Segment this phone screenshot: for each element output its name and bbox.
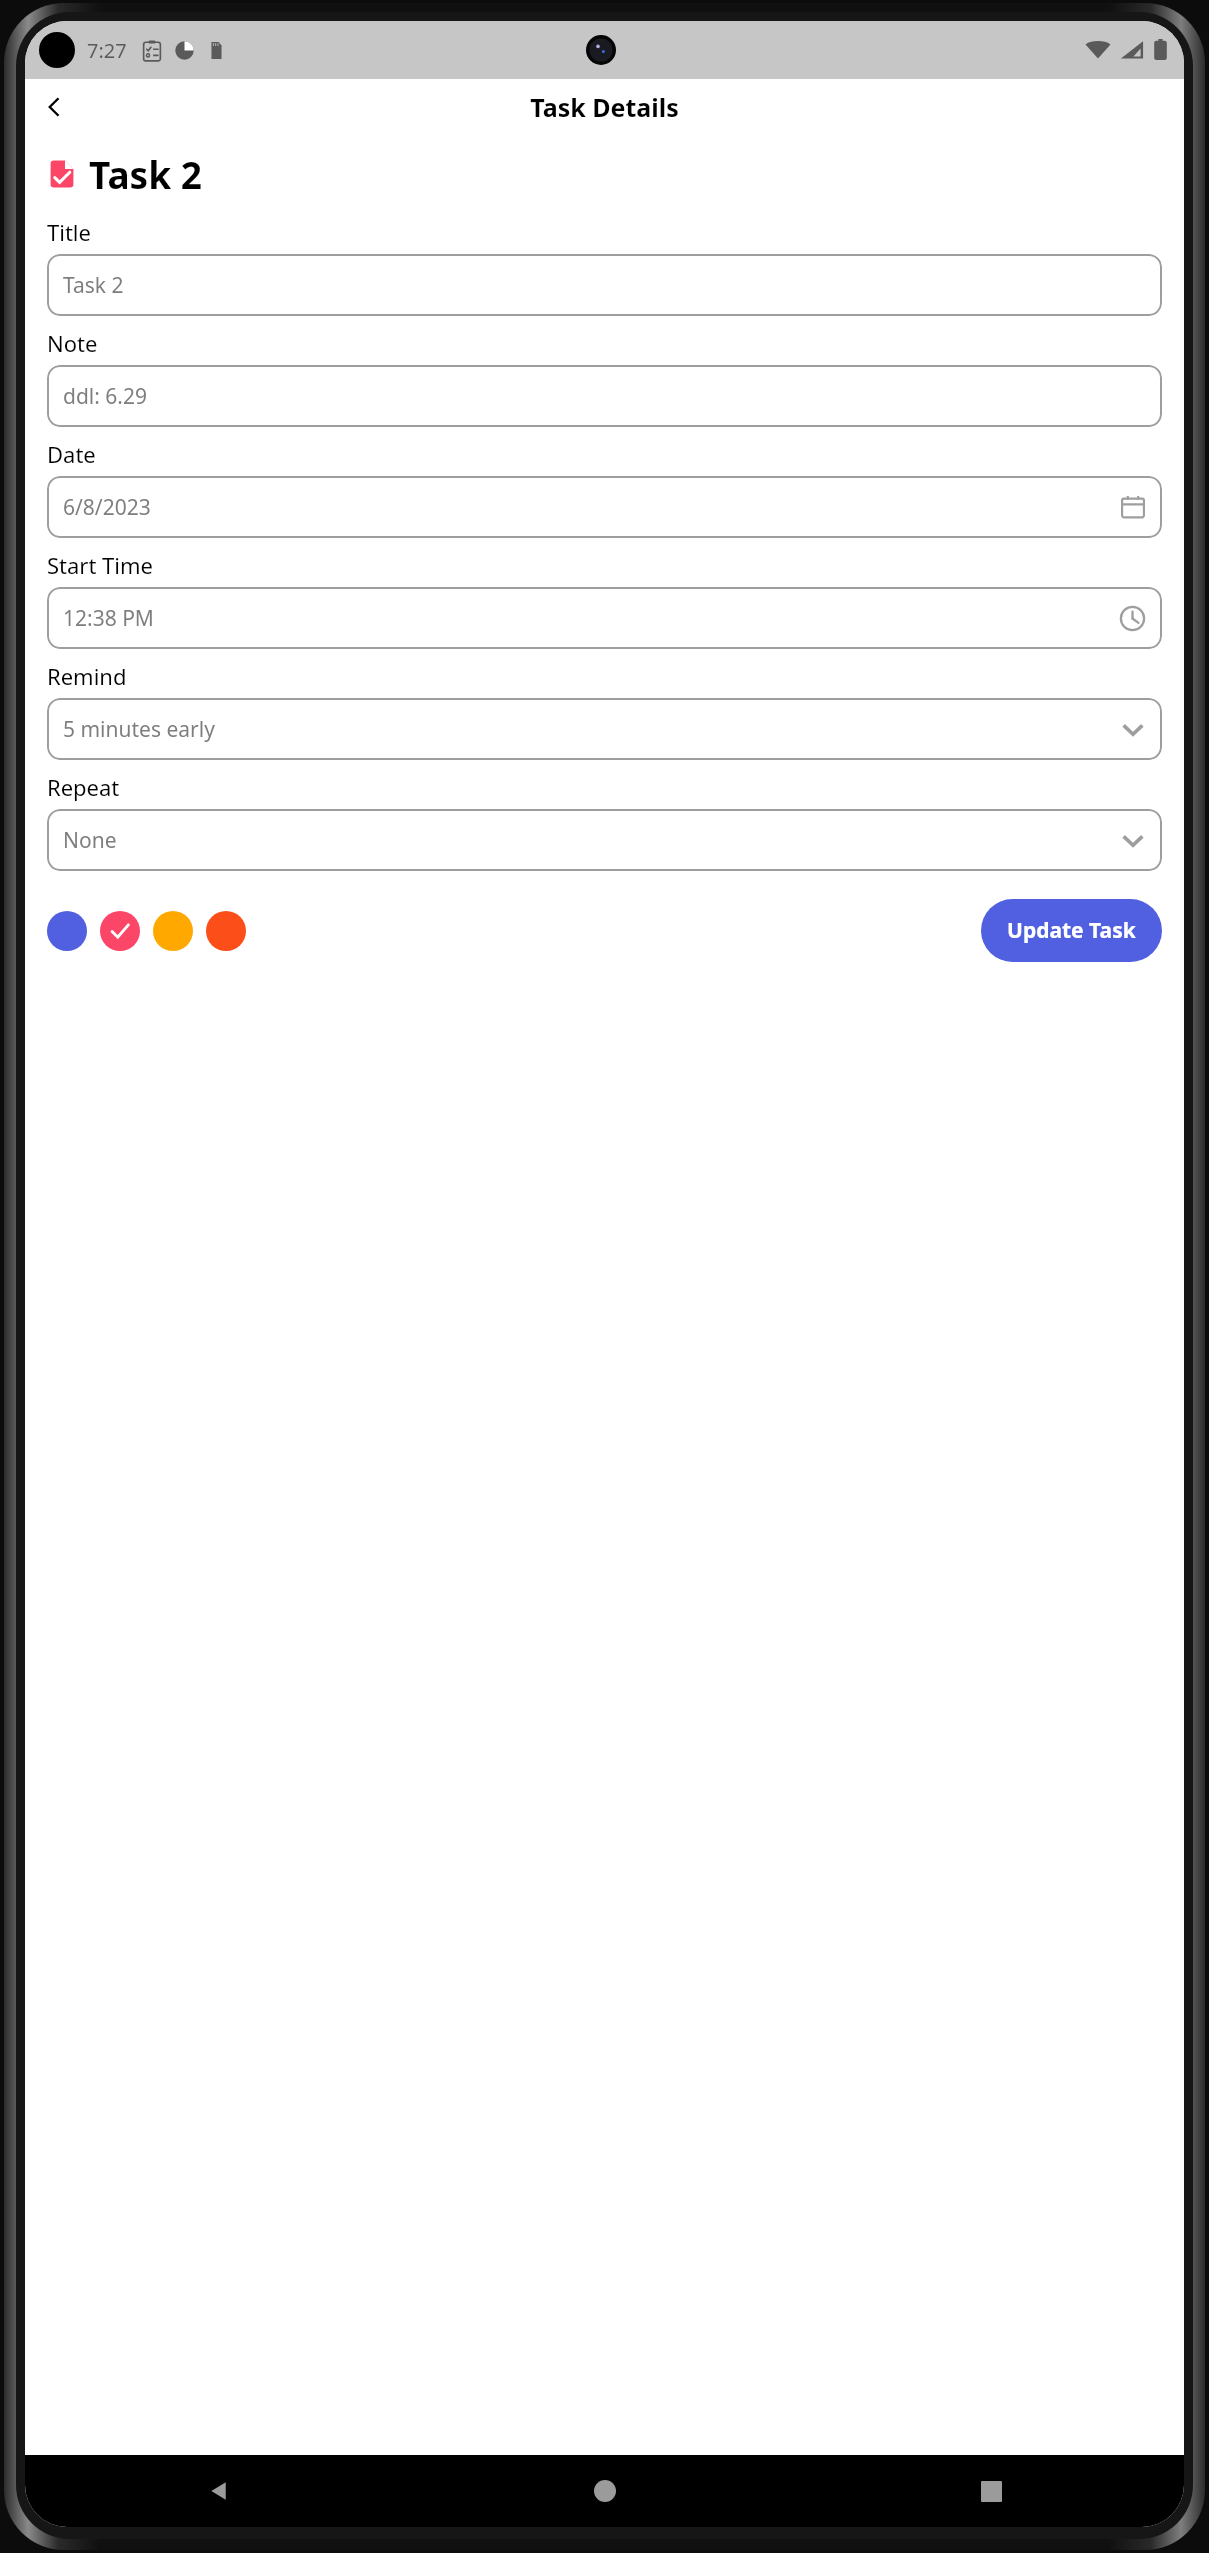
button[interactable]: Select colour [153,911,193,951]
button[interactable]: Home [412,2455,798,2527]
button[interactable]: Update Task [981,899,1162,962]
staticText: 7:27 [87,37,127,64]
button[interactable]: Select colour [206,911,246,951]
staticText: 5 minutes early [63,715,1120,744]
button[interactable]: None [47,809,1162,871]
staticText: 6/8/2023 [63,493,1120,522]
staticText: 12:38 PM [63,604,1119,633]
button[interactable]: Recent apps [798,2455,1184,2527]
staticText: Title [47,217,91,247]
button[interactable]: Select colour [47,911,87,951]
button[interactable]: Task 2 [47,254,1162,316]
button[interactable]: Select colour [100,911,140,951]
staticText: Repeat [47,772,120,802]
button[interactable]: 12:38 PM [47,587,1162,649]
staticText: Start Time [47,550,153,580]
button[interactable]: ddl: 6.29 [47,365,1162,427]
button[interactable]: Back [25,2455,412,2527]
staticText: Note [47,328,98,358]
staticText: Task 2 [63,271,1146,300]
button[interactable]: 5 minutes early [47,698,1162,760]
staticText: Update Task [1007,916,1136,945]
staticText: ddl: 6.29 [63,382,1146,411]
button[interactable]: Back [33,85,77,129]
staticText: Remind [47,661,127,691]
staticText: Task 2 [89,149,202,199]
staticText: Date [47,439,96,469]
button[interactable]: 6/8/2023 [47,476,1162,538]
staticText: None [63,826,1120,855]
staticText: Task Details [530,90,679,124]
